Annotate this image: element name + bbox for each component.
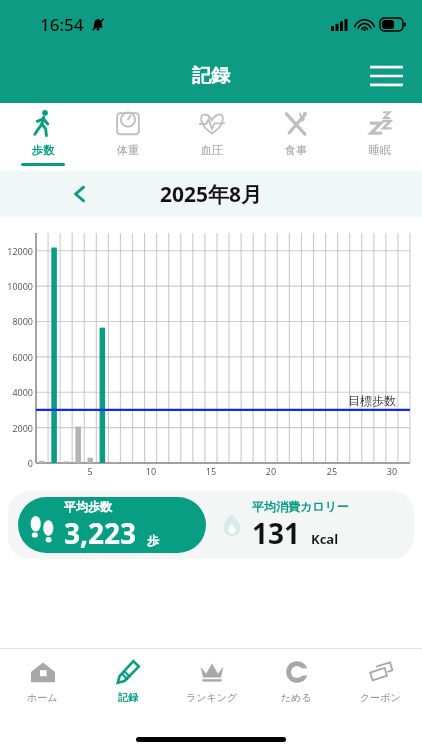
- button[interactable]: ためる: [254, 657, 338, 719]
- button[interactable]: 体重: [85, 103, 170, 171]
- button[interactable]: Menu: [364, 54, 408, 98]
- staticText: 3,223: [64, 514, 137, 552]
- button[interactable]: 平均消費カロリー: [218, 491, 414, 559]
- staticText: 6000: [0, 351, 33, 363]
- button[interactable]: 歩数: [0, 103, 85, 171]
- button[interactable]: Previous month: [62, 176, 98, 212]
- staticText: 4000: [0, 386, 33, 398]
- button[interactable]: 血圧: [170, 103, 254, 171]
- staticText: 131: [252, 514, 301, 552]
- staticText: 体重: [117, 143, 139, 157]
- staticText: ホーム: [27, 691, 58, 704]
- button[interactable]: ホーム: [0, 657, 85, 719]
- staticText: 記録: [192, 64, 230, 88]
- staticText: 25: [322, 465, 342, 477]
- staticText: ランキング: [186, 691, 238, 704]
- button[interactable]: 平均歩数: [18, 497, 206, 553]
- staticText: 平均歩数: [64, 499, 112, 514]
- staticText: クーポン: [360, 691, 401, 704]
- staticText: 睡眠: [369, 143, 391, 157]
- staticText: 歩: [147, 533, 159, 548]
- staticText: 30: [382, 465, 402, 477]
- staticText: 記録: [118, 691, 138, 704]
- staticText: 5: [80, 465, 100, 477]
- staticText: 15: [201, 465, 221, 477]
- button[interactable]: クーポン: [338, 657, 422, 719]
- staticText: 2025年8月: [160, 180, 263, 209]
- staticText: 目標歩数: [348, 393, 396, 408]
- button[interactable]: 睡眠: [338, 103, 422, 171]
- staticText: Kcal: [311, 530, 339, 548]
- staticText: 食事: [285, 143, 307, 157]
- button[interactable]: 記録: [85, 657, 170, 719]
- staticText: 8000: [0, 315, 33, 327]
- staticText: ためる: [281, 691, 312, 704]
- staticText: 血圧: [201, 143, 223, 157]
- button[interactable]: 食事: [254, 103, 338, 171]
- staticText: 歩数: [32, 143, 54, 157]
- button[interactable]: ランキング: [170, 657, 254, 719]
- staticText: 10: [141, 465, 161, 477]
- staticText: 2000: [0, 422, 33, 434]
- staticText: 10000: [0, 280, 33, 292]
- staticText: 0: [0, 457, 33, 469]
- staticText: 12000: [0, 245, 33, 257]
- staticText: 20: [261, 465, 281, 477]
- staticText: 平均消費カロリー: [252, 499, 349, 514]
- staticText: 16:54: [40, 13, 84, 36]
